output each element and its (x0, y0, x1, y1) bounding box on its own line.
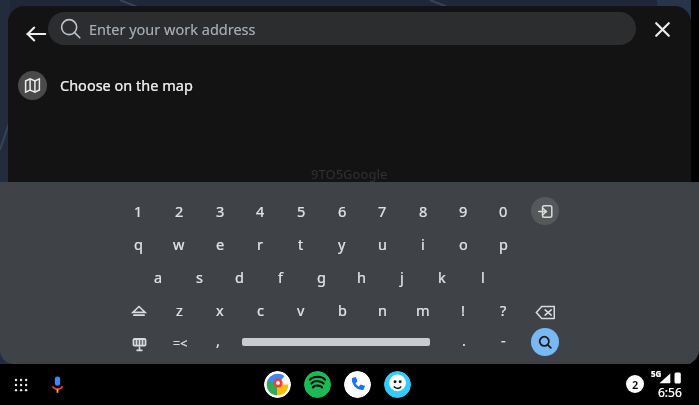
staticText: k (438, 267, 446, 287)
staticText: 8 (419, 201, 428, 221)
button[interactable]: b (326, 297, 358, 323)
button[interactable]: u (366, 231, 398, 257)
button[interactable]: Enter your work address (48, 12, 636, 45)
button[interactable]: spotify (304, 371, 331, 398)
staticText: 0 (499, 201, 508, 221)
staticText: 5G (651, 368, 662, 379)
button[interactable]: Switch keyboard (127, 331, 151, 355)
button[interactable]: h (345, 264, 377, 290)
button[interactable]: m (407, 297, 439, 323)
button[interactable]: g (305, 264, 337, 290)
button[interactable]: w (163, 231, 195, 257)
button[interactable]: Search (531, 328, 559, 356)
staticText: c (257, 300, 264, 320)
button[interactable]: r (244, 231, 276, 257)
staticText: m (416, 300, 430, 320)
button[interactable]: a (142, 264, 174, 290)
staticText: , (216, 330, 220, 350)
button[interactable]: 5 (285, 198, 317, 224)
staticText: 5 (297, 201, 306, 221)
staticText: x (216, 300, 224, 320)
button[interactable]: y (326, 231, 358, 257)
staticText: 9 (459, 201, 468, 221)
button[interactable]: v (285, 297, 317, 323)
button[interactable]: Close (646, 13, 678, 45)
button[interactable]: Tab (531, 197, 559, 225)
staticText: 9TO5Google (311, 165, 388, 183)
staticText: v (297, 300, 305, 320)
staticText: l (481, 267, 485, 287)
button[interactable]: 9 (447, 198, 479, 224)
button[interactable]: q (122, 231, 154, 257)
staticText: e (216, 234, 225, 254)
button[interactable]: waze (384, 371, 411, 398)
button[interactable]: maps (264, 371, 291, 398)
staticText: 4 (256, 201, 265, 221)
staticText: z (176, 300, 183, 320)
button[interactable]: 8 (407, 198, 439, 224)
staticText: d (235, 267, 244, 287)
button[interactable]: k (426, 264, 458, 290)
staticText: p (499, 234, 508, 254)
button[interactable]: 3 (204, 198, 236, 224)
button[interactable]: , (202, 327, 234, 353)
button[interactable]: j (386, 264, 418, 290)
staticText: b (338, 300, 347, 320)
button[interactable]: - (487, 327, 519, 353)
button[interactable]: Apps (8, 372, 34, 398)
staticText: i (421, 234, 425, 254)
button[interactable]: o (447, 231, 479, 257)
button[interactable]: 6 (326, 198, 358, 224)
button[interactable]: Backspace (533, 300, 557, 324)
button[interactable]: f (264, 264, 296, 290)
staticText: a (154, 267, 163, 287)
button[interactable]: t (285, 231, 317, 257)
button[interactable]: z (163, 297, 195, 323)
button[interactable]: 2 (163, 198, 195, 224)
button[interactable]: Shift (127, 299, 151, 323)
staticText: n (378, 300, 387, 320)
button[interactable]: 4 (244, 198, 276, 224)
staticText: Enter your work address (89, 19, 256, 39)
staticText: s (196, 267, 203, 287)
staticText: t (298, 234, 304, 254)
button[interactable]: n (366, 297, 398, 323)
button[interactable]: s (183, 264, 215, 290)
button[interactable]: 1 (122, 198, 154, 224)
button[interactable]: c (244, 297, 276, 323)
staticText: 3 (216, 201, 225, 221)
button[interactable]: phone (344, 371, 371, 398)
button[interactable]: 0 (487, 198, 519, 224)
button[interactable]: Space (242, 338, 430, 346)
staticText: . (462, 330, 466, 350)
staticText: - (501, 330, 506, 350)
staticText: h (357, 267, 366, 287)
button[interactable]: ! (447, 297, 479, 323)
button[interactable]: Back (16, 14, 56, 54)
staticText: o (459, 234, 468, 254)
staticText: =< (173, 335, 188, 352)
staticText: ? (500, 300, 507, 320)
staticText: f (278, 267, 283, 287)
button[interactable]: i (407, 231, 439, 257)
button[interactable]: e (204, 231, 236, 257)
staticText: 7 (378, 201, 387, 221)
staticText: ! (461, 300, 465, 320)
button[interactable]: Choose on the map (8, 63, 691, 107)
button[interactable]: p (487, 231, 519, 257)
button[interactable]: l (467, 264, 499, 290)
staticText: 1 (134, 201, 143, 221)
button[interactable]: 7 (366, 198, 398, 224)
staticText: Choose on the map (60, 75, 193, 95)
button[interactable]: ? (487, 297, 519, 323)
button[interactable]: x (204, 297, 236, 323)
staticText: w (173, 234, 185, 254)
button[interactable]: d (223, 264, 255, 290)
staticText: g (317, 267, 326, 287)
staticText: 6 (338, 201, 347, 221)
staticText: 2 (175, 201, 184, 221)
button[interactable]: . (448, 327, 480, 353)
button[interactable]: =< (164, 330, 196, 356)
staticText: 6:56 (658, 384, 682, 400)
button[interactable]: Assistant (44, 371, 71, 398)
